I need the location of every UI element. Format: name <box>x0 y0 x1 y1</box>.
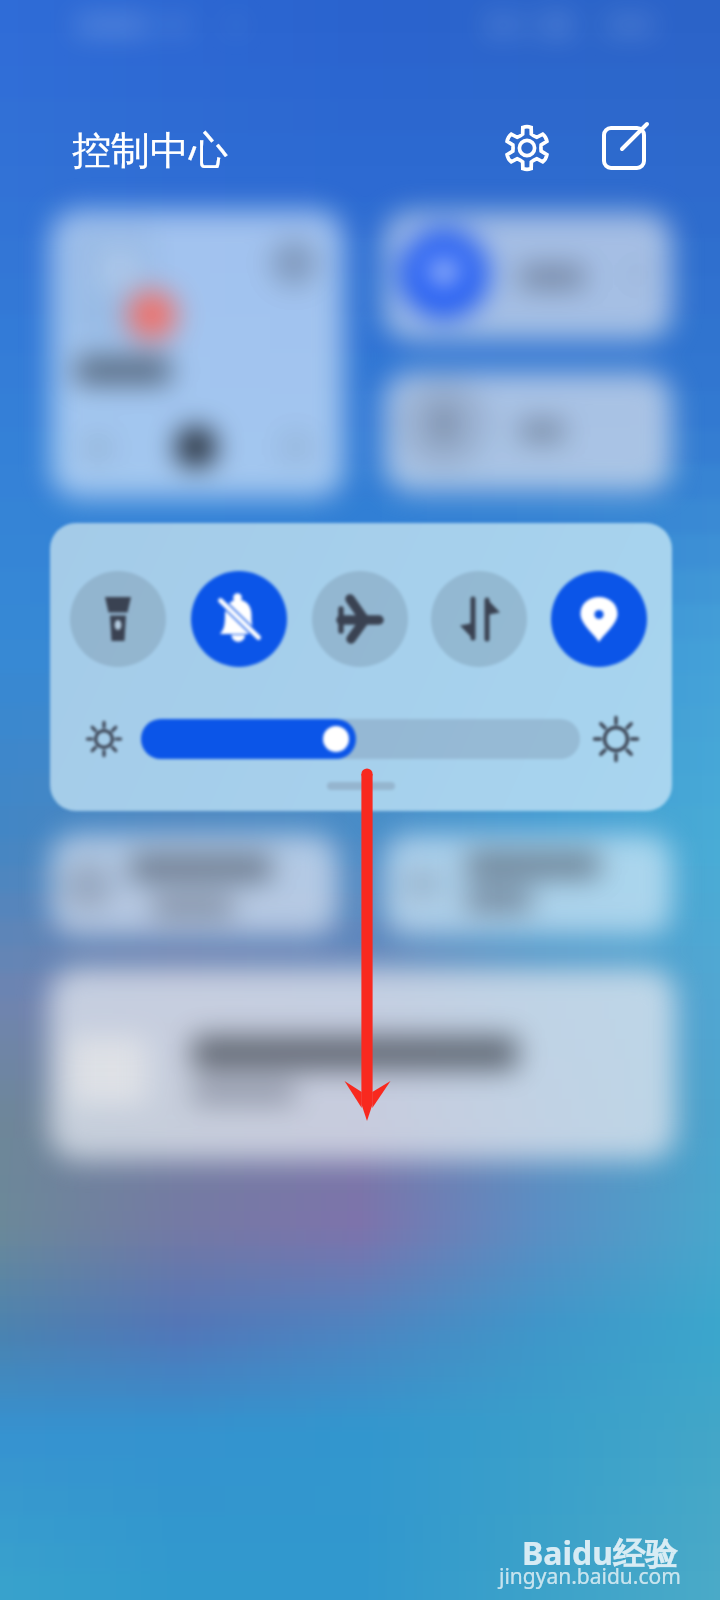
button[interactable]: Brightness <box>141 715 580 763</box>
button[interactable]: Edit control center <box>588 112 660 184</box>
button[interactable]: Mobile data <box>431 571 527 667</box>
button[interactable]: Notification <box>51 834 338 935</box>
button[interactable]: Settings <box>491 112 563 184</box>
button[interactable]: Notification <box>49 968 676 1160</box>
button[interactable]: Location <box>551 571 647 667</box>
button[interactable]: Silent mode <box>191 571 287 667</box>
button[interactable]: Wi-Fi <box>384 212 672 340</box>
button[interactable]: Bluetooth <box>384 370 672 495</box>
button[interactable]: Flashlight <box>70 571 166 667</box>
button[interactable]: Notification <box>384 834 672 935</box>
button[interactable]: Media player <box>51 210 344 498</box>
button[interactable]: Airplane mode <box>312 571 408 667</box>
